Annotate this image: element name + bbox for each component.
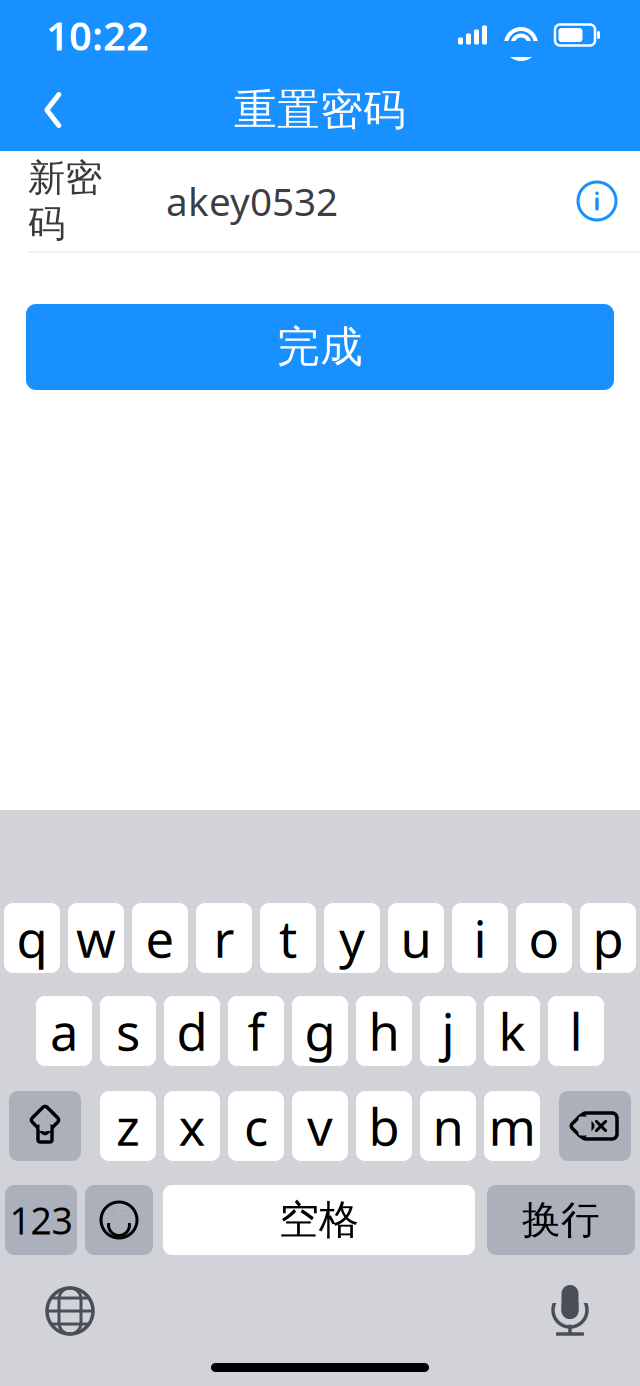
button[interactable]: 切换键盘 xyxy=(40,1281,100,1341)
staticText: v xyxy=(307,1092,333,1160)
button[interactable]: x xyxy=(164,1091,220,1161)
staticText: akey0532 xyxy=(166,175,338,227)
staticText: t xyxy=(279,904,297,972)
button[interactable]: a xyxy=(36,996,92,1066)
staticText: d xyxy=(176,997,207,1065)
staticText: 重置密码 xyxy=(234,84,406,136)
staticText: g xyxy=(304,997,335,1065)
staticText: 换行 xyxy=(522,1196,600,1244)
staticText: z xyxy=(116,1092,140,1160)
button[interactable]: 空格 xyxy=(163,1185,475,1255)
button[interactable]: 删除 xyxy=(559,1091,631,1161)
staticText: c xyxy=(244,1092,268,1160)
button[interactable]: v xyxy=(292,1091,348,1161)
button[interactable]: 语音输入 xyxy=(540,1281,600,1341)
button[interactable]: g xyxy=(292,996,348,1066)
staticText: n xyxy=(432,1092,463,1160)
staticText: y xyxy=(339,904,365,972)
staticText: e xyxy=(145,904,174,972)
button[interactable]: 换行 xyxy=(487,1185,635,1255)
button[interactable]: Shift xyxy=(9,1091,81,1161)
button[interactable]: k xyxy=(484,996,540,1066)
staticText: f xyxy=(247,997,264,1065)
staticText: q xyxy=(16,904,47,972)
button[interactable]: b xyxy=(356,1091,412,1161)
button[interactable]: h xyxy=(356,996,412,1066)
staticText: m xyxy=(488,1092,535,1160)
staticText: x xyxy=(178,1092,205,1160)
staticText: 10:22 xyxy=(46,8,149,61)
button[interactable]: m xyxy=(484,1091,540,1161)
button[interactable]: i xyxy=(452,903,508,973)
staticText: k xyxy=(498,997,525,1065)
button[interactable]: 新密码 xyxy=(0,151,640,251)
button[interactable]: 123 xyxy=(5,1185,77,1255)
button[interactable]: f xyxy=(228,996,284,1066)
staticText: o xyxy=(528,904,559,972)
staticText: p xyxy=(592,904,623,972)
button[interactable]: q xyxy=(4,903,60,973)
button[interactable]: c xyxy=(228,1091,284,1161)
staticText: j xyxy=(441,997,454,1065)
button[interactable]: e xyxy=(132,903,188,973)
staticText: 新密码 xyxy=(28,155,102,247)
button[interactable]: y xyxy=(324,903,380,973)
staticText: r xyxy=(213,904,234,972)
button[interactable]: z xyxy=(100,1091,156,1161)
staticText: 空格 xyxy=(279,1195,359,1244)
staticText: l xyxy=(569,997,582,1065)
staticText: s xyxy=(116,997,140,1065)
button[interactable]: j xyxy=(420,996,476,1066)
button[interactable]: p xyxy=(580,903,636,973)
button[interactable]: n xyxy=(420,1091,476,1161)
button[interactable]: r xyxy=(196,903,252,973)
button[interactable]: d xyxy=(164,996,220,1066)
staticText: h xyxy=(368,997,399,1065)
staticText: a xyxy=(50,997,78,1065)
staticText: 123 xyxy=(9,1195,72,1245)
button[interactable]: o xyxy=(516,903,572,973)
button[interactable]: w xyxy=(68,903,124,973)
button[interactable]: 返回 xyxy=(18,75,88,145)
staticText: b xyxy=(368,1092,399,1160)
button[interactable]: t xyxy=(260,903,316,973)
button[interactable]: 表情 xyxy=(85,1185,153,1255)
button[interactable]: l xyxy=(548,996,604,1066)
staticText: i xyxy=(473,904,486,972)
button[interactable]: 完成 xyxy=(26,304,614,390)
staticText: w xyxy=(76,904,116,972)
staticText: u xyxy=(400,904,431,972)
button[interactable]: u xyxy=(388,903,444,973)
staticText: 完成 xyxy=(277,321,363,373)
button[interactable]: s xyxy=(100,996,156,1066)
